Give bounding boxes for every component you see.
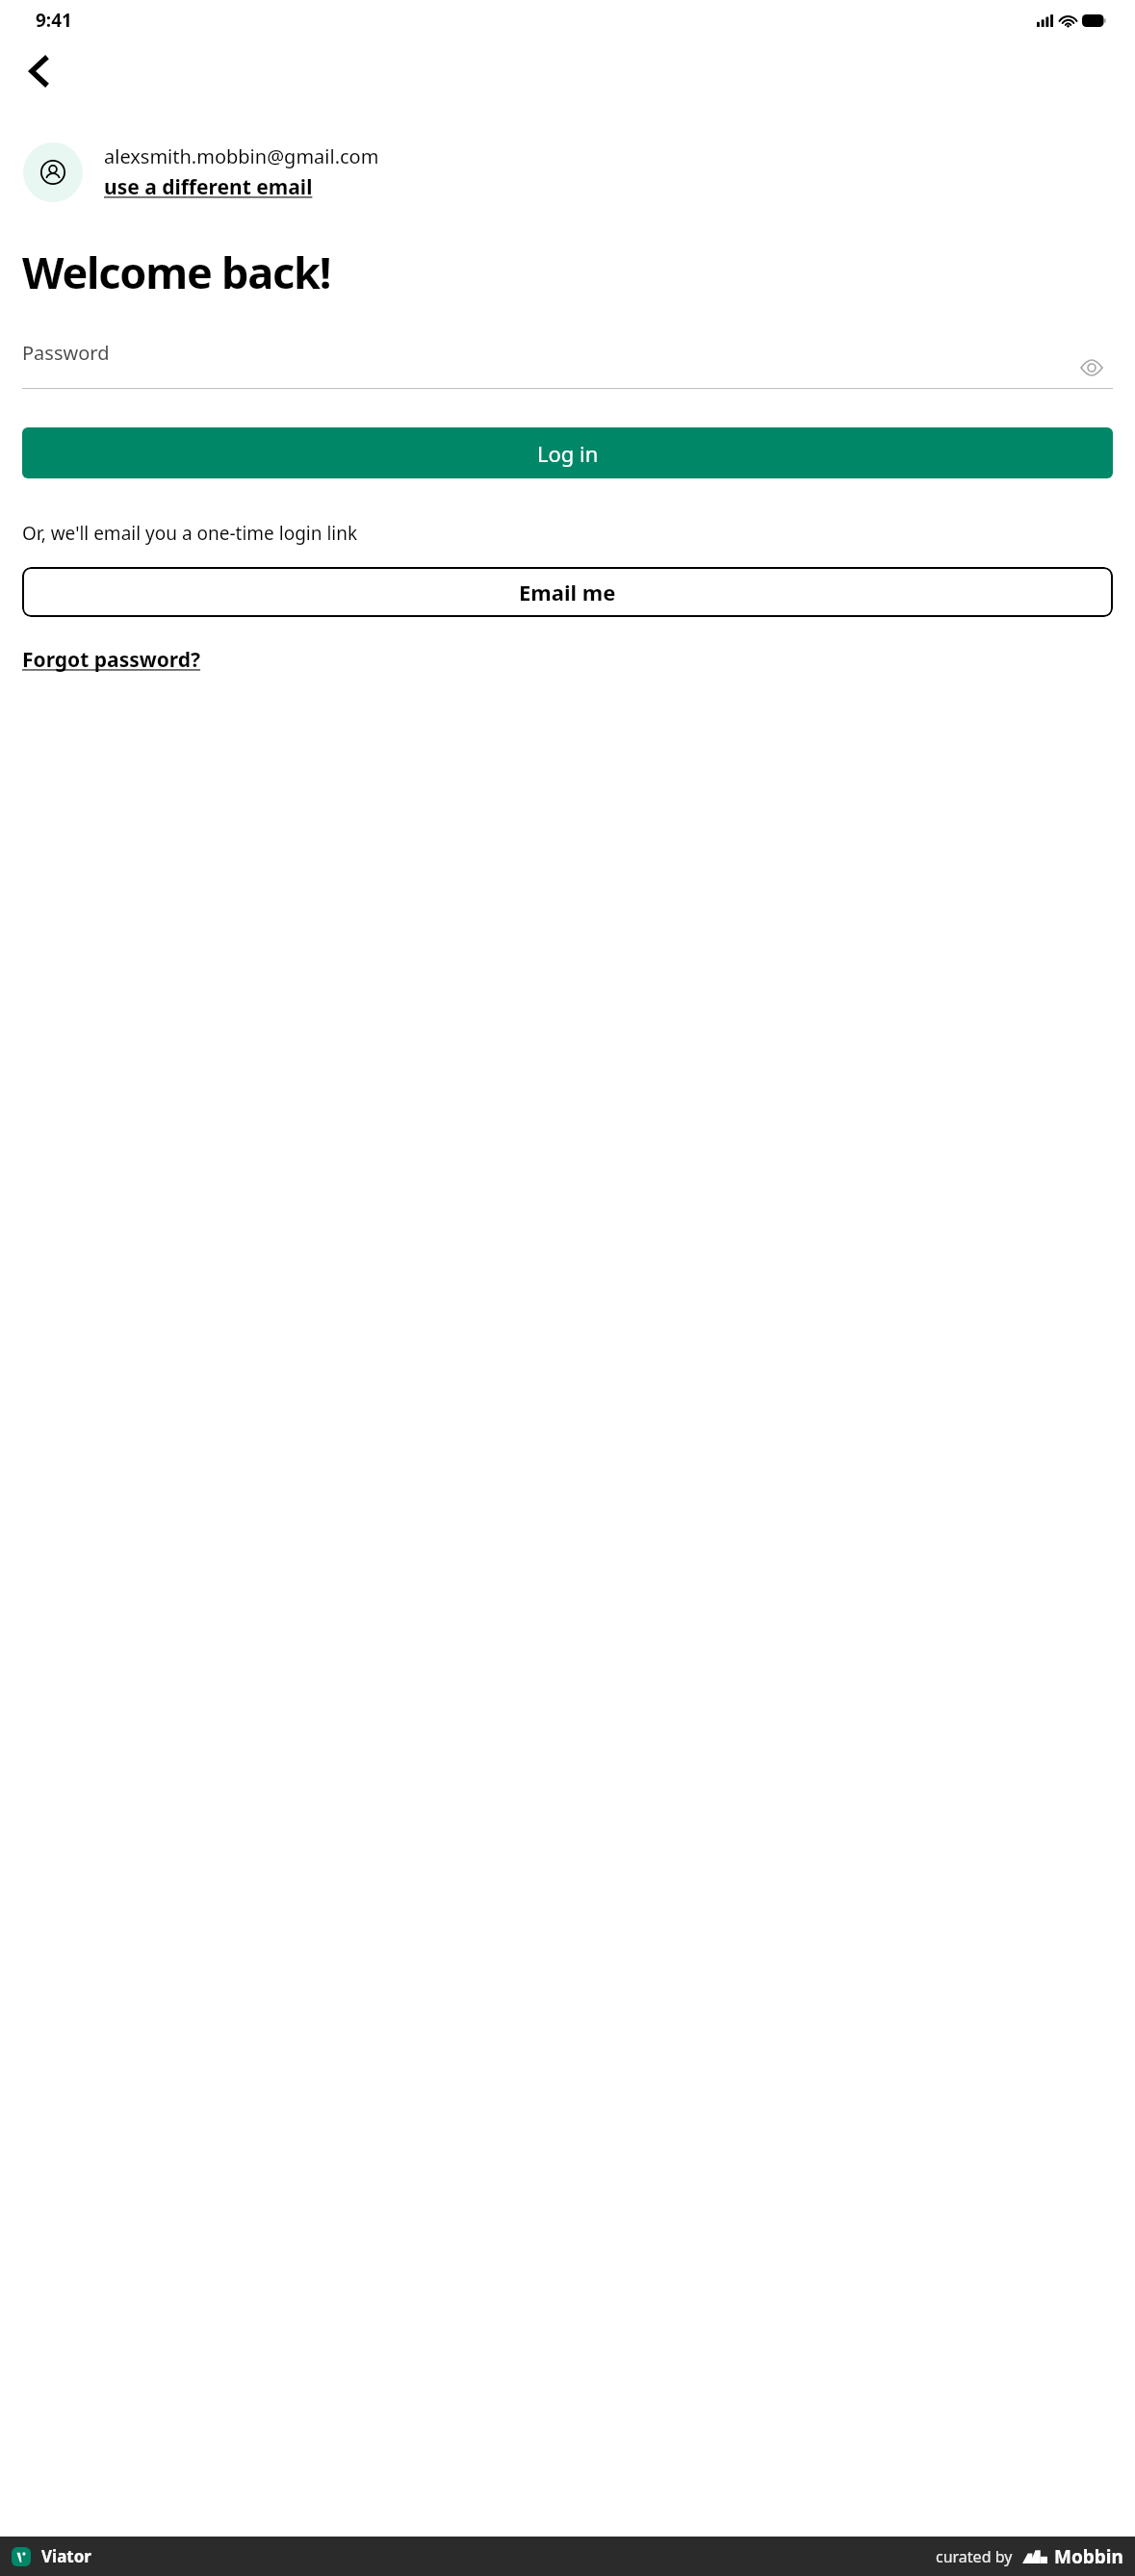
staticText: Email me [519, 578, 616, 606]
button[interactable]: Forgot password? [22, 642, 201, 678]
button[interactable]: Back [13, 46, 64, 96]
staticText: curated by [936, 2546, 1013, 2567]
button[interactable]: Log in [22, 427, 1113, 478]
staticText: Log in [537, 439, 599, 468]
staticText: Welcome back! [22, 243, 331, 301]
staticText: Or, we'll email you a one-time login lin… [22, 521, 358, 546]
button[interactable]: Show password [1071, 339, 1113, 381]
button[interactable]: use a different email [104, 173, 313, 201]
staticText: Viator [41, 2545, 91, 2567]
button[interactable]: Email me [22, 567, 1113, 617]
staticText: Password [22, 340, 1071, 366]
staticText: Mobbin [1054, 2544, 1123, 2569]
staticText: alexsmith.mobbin@gmail.com [104, 143, 379, 169]
staticText: 9:41 [36, 8, 72, 33]
staticText: use a different email [104, 173, 313, 201]
staticText: Forgot password? [22, 646, 201, 674]
